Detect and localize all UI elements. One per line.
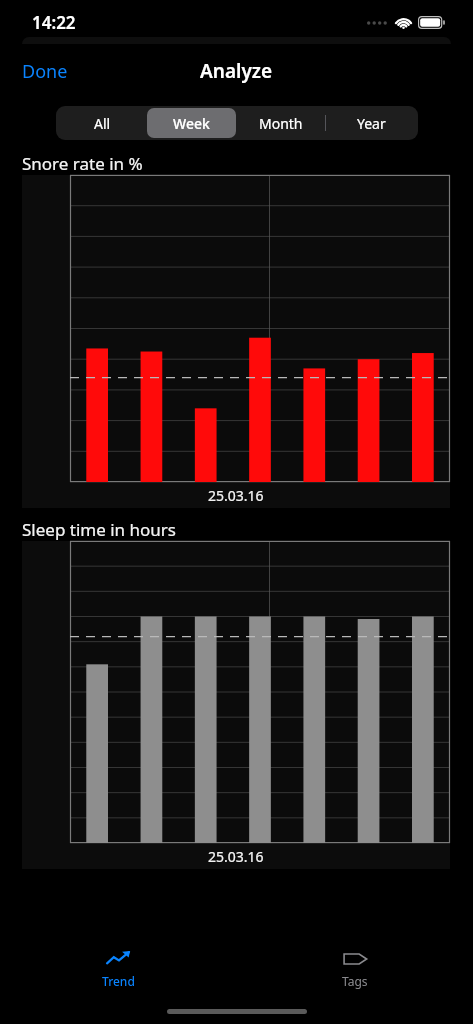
staticText: Snore rate in % <box>22 152 143 175</box>
button[interactable]: Done <box>0 53 90 90</box>
other: Trend <box>106 950 132 968</box>
button[interactable]: Week <box>147 108 236 138</box>
staticText: Analyze <box>200 58 273 84</box>
staticText: 25.03.16 <box>208 486 264 505</box>
staticText: Week <box>173 114 210 133</box>
staticText: Done <box>22 59 68 84</box>
staticText: Tags <box>342 973 368 989</box>
staticText: 25.03.16 <box>208 847 264 866</box>
staticText: Year <box>357 114 386 133</box>
button[interactable]: Month <box>236 108 326 138</box>
staticText: Month <box>259 114 303 133</box>
staticText: All <box>94 114 111 133</box>
button[interactable]: Trend <box>0 940 236 998</box>
button[interactable]: All <box>58 108 147 138</box>
other: Tags <box>342 950 368 968</box>
staticText: Trend <box>102 973 135 989</box>
button[interactable]: Tags <box>236 940 473 998</box>
staticText: 14:22 <box>32 11 76 34</box>
staticText: Sleep time in hours <box>22 518 176 541</box>
button[interactable]: Year <box>326 108 416 138</box>
